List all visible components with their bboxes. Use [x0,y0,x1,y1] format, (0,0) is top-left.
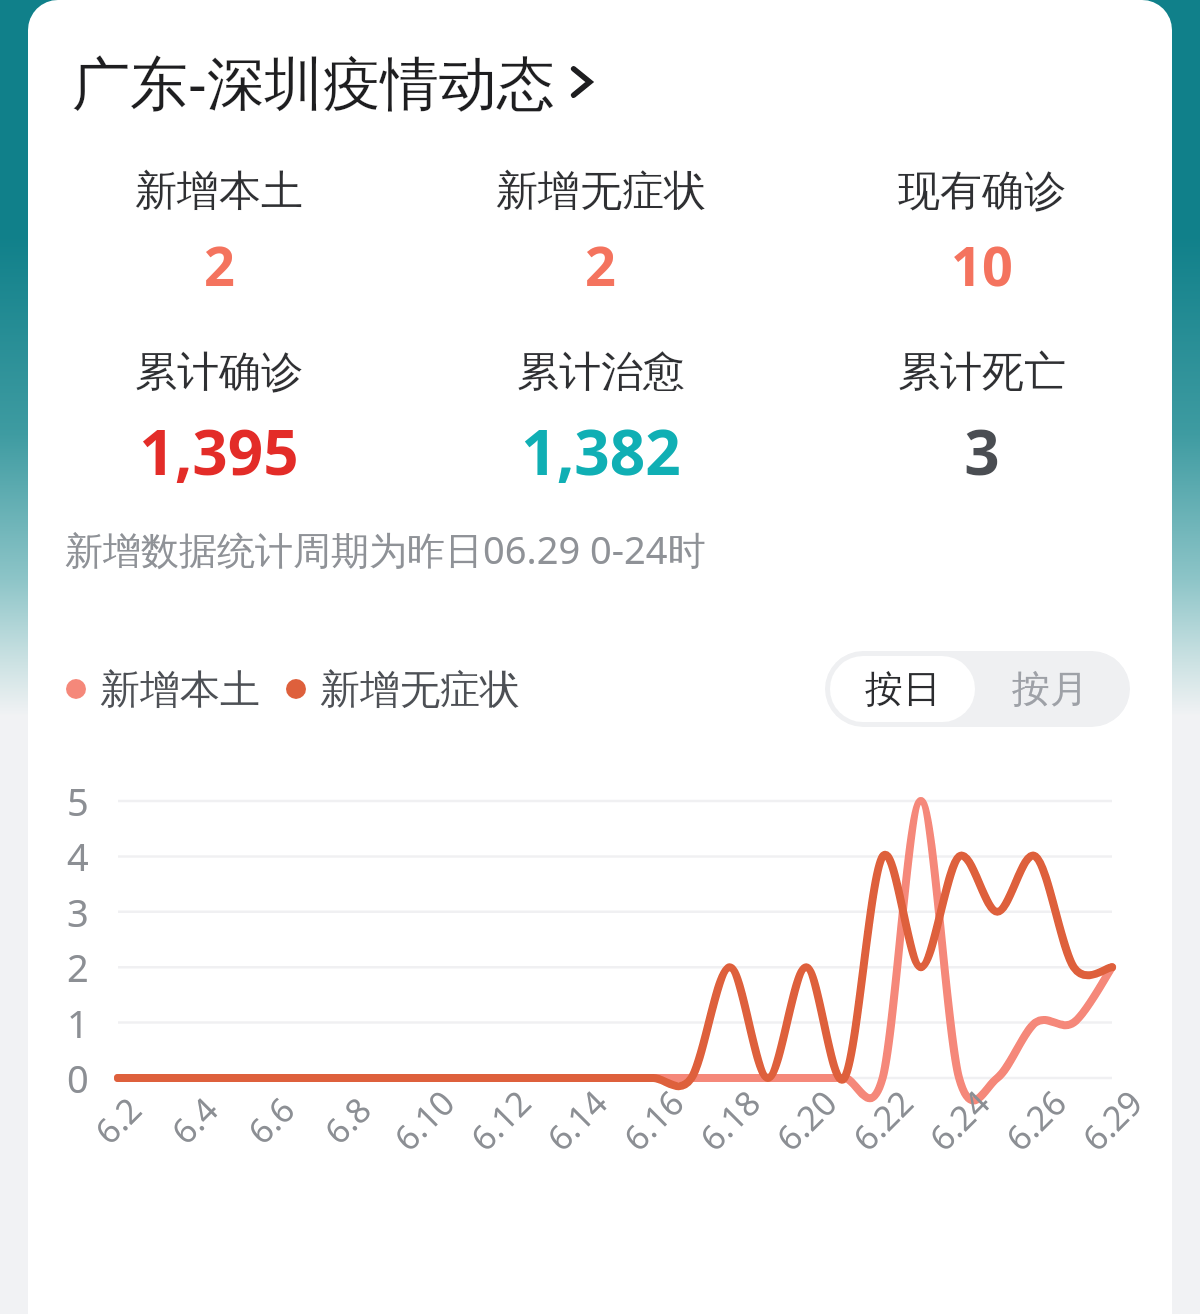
staticText: 累计死亡 [898,346,1066,399]
button[interactable]: 累计死亡 [791,346,1172,493]
staticText: 新增本土 [100,664,260,714]
button[interactable]: 按月 [975,656,1125,722]
staticText: 广东-深圳疫情动态 [72,42,555,121]
staticText: 3 [964,409,1000,493]
staticText: 新增本土 [135,165,303,218]
staticText: 累计确诊 [135,346,303,399]
button[interactable]: 按日 [830,656,975,722]
staticText: 1,395 [139,409,299,493]
staticText: 2 [204,228,235,302]
staticText: 10 [951,228,1013,302]
staticText: 累计治愈 [517,346,685,399]
staticText: 1,382 [521,409,681,493]
staticText: 现有确诊 [898,165,1066,218]
button[interactable]: 累计确诊 [28,346,410,493]
button[interactable]: 新增无症状 [286,658,520,720]
button[interactable]: 新增本土 [66,658,260,720]
button[interactable]: 新增无症状 [410,165,791,302]
staticText: 新增数据统计周期为昨日06.29 0-24时 [65,523,706,575]
button[interactable]: 累计治愈 [410,346,791,493]
staticText: 2 [585,228,616,302]
button[interactable]: 现有确诊 [791,165,1172,302]
staticText: 按日 [865,665,941,713]
button[interactable]: 新增本土 [28,165,410,302]
staticText: 按月 [1012,665,1088,713]
button[interactable]: 广东-深圳疫情动态 [28,38,615,125]
staticText: 新增无症状 [320,664,520,714]
staticText: 新增无症状 [496,165,706,218]
